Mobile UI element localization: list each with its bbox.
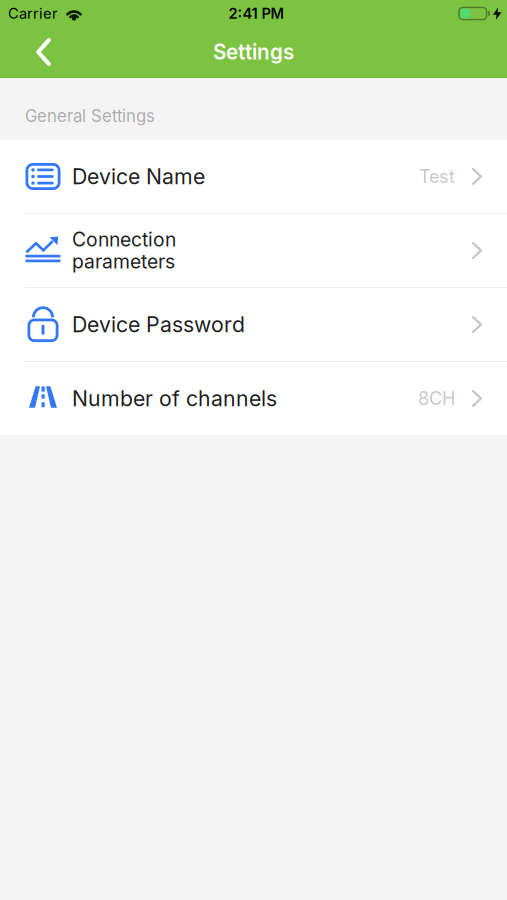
staticText: Number of channels: [72, 386, 277, 411]
staticText: Carrier: [8, 5, 58, 22]
button[interactable]: Device Name: [0, 140, 507, 213]
staticText: Device Name: [72, 164, 205, 189]
staticText: Connection parameters: [72, 228, 176, 272]
staticText: Settings: [213, 39, 294, 64]
button[interactable]: Back: [0, 38, 63, 66]
button[interactable]: Connection parameters: [0, 214, 507, 287]
button[interactable]: Number of channels: [0, 362, 507, 435]
staticText: 2:41 PM: [228, 5, 284, 22]
staticText: Test: [419, 166, 455, 187]
staticText: General Settings: [25, 106, 155, 126]
staticText: 8CH: [418, 388, 455, 409]
staticText: Device Password: [72, 312, 245, 337]
button[interactable]: Device Password: [0, 288, 507, 361]
